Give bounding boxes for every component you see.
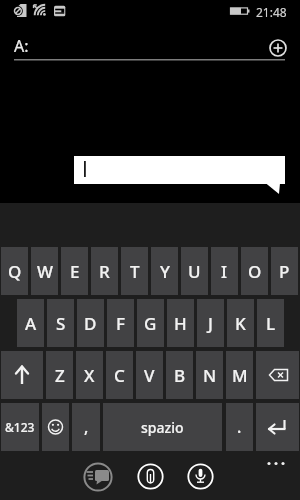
staticText: Z xyxy=(55,364,65,387)
staticText: W xyxy=(37,260,53,283)
button[interactable]: &123 xyxy=(1,403,39,451)
button[interactable]: G xyxy=(137,299,164,347)
button[interactable]: I xyxy=(211,247,238,295)
staticText: N xyxy=(203,364,217,387)
staticText: M xyxy=(232,364,248,387)
button[interactable] xyxy=(187,463,214,490)
button[interactable]: N xyxy=(196,351,223,399)
staticText: Q xyxy=(8,260,22,283)
staticText: S xyxy=(56,312,66,335)
button[interactable]: T xyxy=(121,247,148,295)
staticText: X xyxy=(84,364,95,387)
staticText: A xyxy=(25,312,37,335)
staticText: A: xyxy=(14,35,29,57)
staticText: L xyxy=(266,312,276,335)
staticText: 21:48 xyxy=(256,4,287,20)
button[interactable]: S xyxy=(47,299,74,347)
staticText: . xyxy=(237,416,242,438)
staticText: O xyxy=(248,260,262,283)
staticText: F xyxy=(116,312,125,335)
button[interactable]: , xyxy=(72,403,100,451)
staticText: R xyxy=(99,260,110,283)
button[interactable]: J xyxy=(197,299,224,347)
staticText: T xyxy=(130,260,140,283)
button[interactable]: E xyxy=(61,247,88,295)
staticText: G xyxy=(144,312,157,335)
button[interactable]: Y xyxy=(151,247,178,295)
button[interactable]: D xyxy=(77,299,104,347)
button[interactable]: K xyxy=(227,299,254,347)
button[interactable]: M xyxy=(226,351,253,399)
button[interactable]: V xyxy=(136,351,163,399)
staticText: U xyxy=(188,260,201,283)
staticText: J xyxy=(208,312,213,335)
button[interactable] xyxy=(268,38,288,58)
staticText: V xyxy=(144,364,155,387)
button[interactable]: X xyxy=(76,351,103,399)
button[interactable]: spazio xyxy=(103,403,222,451)
button[interactable]: Z xyxy=(46,351,73,399)
button[interactable] xyxy=(1,351,43,399)
button[interactable] xyxy=(263,456,289,471)
button[interactable]: C xyxy=(106,351,133,399)
staticText: E xyxy=(70,260,80,283)
button[interactable]: U xyxy=(181,247,208,295)
button[interactable]: R xyxy=(91,247,118,295)
staticText: P xyxy=(279,260,290,283)
staticText: Y xyxy=(160,260,170,283)
button[interactable]: O xyxy=(241,247,268,295)
button[interactable]: W xyxy=(31,247,58,295)
staticText: H xyxy=(174,312,187,335)
staticText: spazio xyxy=(141,418,184,437)
button[interactable] xyxy=(137,463,164,490)
staticText: , xyxy=(84,416,89,438)
staticText: B xyxy=(174,364,186,387)
staticText: I xyxy=(221,260,228,283)
staticText: K xyxy=(235,312,246,335)
staticText: &123 xyxy=(5,419,35,435)
button[interactable]: F xyxy=(107,299,134,347)
staticText: D xyxy=(84,312,97,335)
button[interactable]: P xyxy=(271,247,298,295)
button[interactable] xyxy=(42,403,69,451)
button[interactable]: B xyxy=(166,351,193,399)
button[interactable]: H xyxy=(167,299,194,347)
button[interactable]: A xyxy=(17,299,44,347)
button[interactable]: L xyxy=(257,299,284,347)
staticText: C xyxy=(114,364,125,387)
button[interactable] xyxy=(256,403,299,451)
button[interactable] xyxy=(256,351,299,399)
button[interactable] xyxy=(83,462,113,492)
button[interactable]: Q xyxy=(1,247,28,295)
button[interactable]: . xyxy=(226,403,253,451)
